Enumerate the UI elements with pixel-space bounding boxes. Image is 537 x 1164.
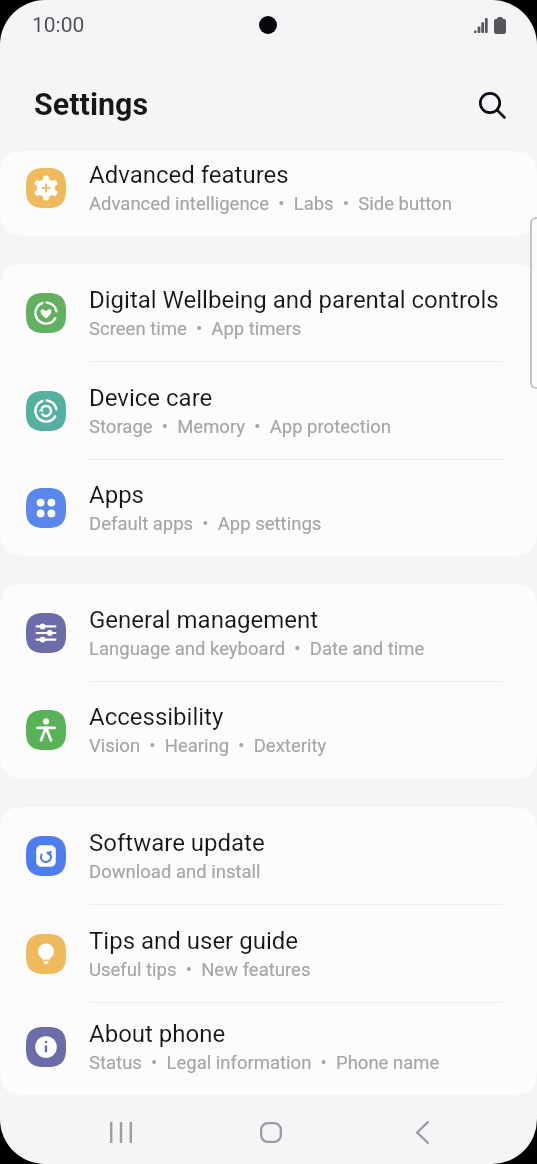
staticText: Digital Wellbeing and parental controls bbox=[89, 286, 499, 314]
button[interactable]: About phone bbox=[0, 1003, 537, 1095]
staticText: Default apps • App settings bbox=[89, 513, 322, 535]
button[interactable]: Digital Wellbeing and parental controls bbox=[0, 264, 537, 361]
staticText: About phone bbox=[89, 1020, 226, 1048]
staticText: Device care bbox=[89, 384, 213, 412]
staticText: Storage • Memory • App protection bbox=[89, 416, 392, 438]
staticText: Download and install bbox=[89, 861, 261, 883]
button[interactable]: Back bbox=[388, 1098, 456, 1164]
button[interactable]: Device care bbox=[0, 362, 537, 459]
button[interactable]: Software update bbox=[0, 807, 537, 904]
button[interactable]: Tips and user guide bbox=[0, 905, 537, 1002]
button[interactable]: Search bbox=[468, 81, 514, 127]
button[interactable]: Home bbox=[237, 1098, 305, 1164]
button[interactable]: Recent apps bbox=[87, 1098, 155, 1164]
staticText: Useful tips • New features bbox=[89, 959, 311, 981]
staticText: Status • Legal information • Phone name bbox=[89, 1052, 440, 1074]
button[interactable]: General management bbox=[0, 584, 537, 681]
button[interactable]: Apps bbox=[0, 460, 537, 556]
button[interactable]: Advanced features bbox=[0, 151, 537, 236]
staticText: Screen time • App timers bbox=[89, 318, 302, 340]
staticText: Language and keyboard • Date and time bbox=[89, 638, 425, 660]
staticText: Apps bbox=[89, 481, 144, 509]
staticText: Tips and user guide bbox=[89, 927, 299, 955]
staticText: Settings bbox=[34, 87, 149, 123]
staticText: Software update bbox=[89, 829, 265, 857]
staticText: Advanced intelligence • Labs • Side butt… bbox=[89, 193, 452, 215]
button[interactable]: Accessibility bbox=[0, 682, 537, 778]
staticText: Vision • Hearing • Dexterity bbox=[89, 735, 327, 757]
staticText: 10:00 bbox=[32, 13, 85, 38]
staticText: Advanced features bbox=[89, 161, 289, 189]
staticText: Accessibility bbox=[89, 703, 224, 731]
staticText: General management bbox=[89, 606, 319, 634]
